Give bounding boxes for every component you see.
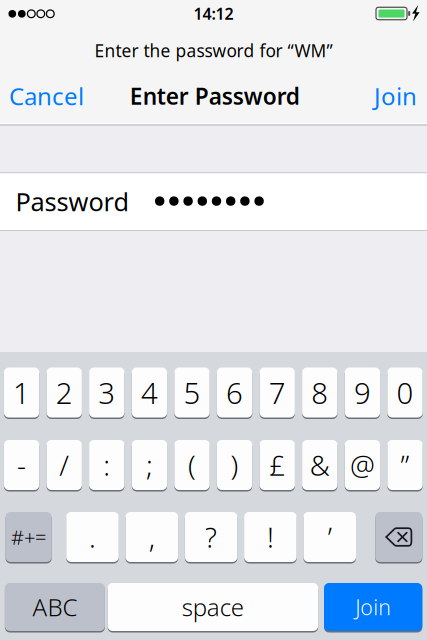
staticText: 0 (396, 373, 413, 412)
staticText: 2 (56, 373, 73, 412)
staticText: Join (355, 593, 391, 621)
staticText: £ (269, 446, 285, 484)
staticText: ; (146, 446, 153, 484)
button[interactable]: Delete (375, 511, 422, 563)
staticText: . (89, 518, 96, 556)
staticText: 14:12 (193, 3, 233, 24)
button[interactable]: 8 (302, 366, 337, 418)
staticText: ’ (328, 518, 332, 556)
staticText: 6 (226, 373, 243, 412)
button[interactable]: Cancel (0, 71, 95, 121)
staticText: - (17, 446, 26, 484)
button[interactable]: ( (174, 439, 210, 491)
staticText: ( (188, 446, 196, 484)
staticText: Enter Password (130, 81, 300, 111)
button[interactable]: & (302, 439, 337, 491)
button[interactable]: 3 (89, 366, 124, 418)
staticText: 1 (13, 373, 30, 412)
button[interactable]: 4 (132, 366, 167, 418)
staticText: / (59, 446, 69, 484)
staticText: ? (205, 518, 217, 556)
staticText: 5 (183, 373, 200, 412)
staticText: : (103, 446, 110, 484)
button[interactable]: ! (244, 511, 297, 563)
button[interactable]: 1 (4, 366, 39, 418)
button[interactable]: More symbols (6, 511, 52, 563)
staticText: ) (231, 446, 239, 484)
button[interactable]: @ (345, 439, 380, 491)
button[interactable]: ’ (303, 511, 356, 563)
staticText: #+= (11, 524, 46, 550)
button[interactable]: ? (185, 511, 237, 563)
button[interactable]: ) (217, 439, 252, 491)
staticText: @ (350, 446, 375, 484)
staticText: 8 (311, 373, 328, 412)
staticText: 4 (141, 373, 158, 412)
button[interactable]: : (89, 439, 124, 491)
staticText: Enter the password for “WM” (94, 39, 332, 62)
staticText: Cancel (9, 80, 84, 112)
button[interactable]: ; (132, 439, 167, 491)
button[interactable]: £ (259, 439, 295, 491)
button[interactable]: / (46, 439, 82, 491)
button[interactable]: . (66, 511, 119, 563)
staticText: 9 (354, 373, 371, 412)
button[interactable]: 2 (46, 366, 82, 418)
staticText: ” (400, 446, 409, 484)
staticText: , (149, 518, 155, 556)
button[interactable]: ” (387, 439, 423, 491)
button[interactable]: Join (324, 582, 422, 632)
staticText: 3 (98, 373, 115, 412)
staticText: space (182, 591, 244, 623)
button[interactable]: - (4, 439, 39, 491)
button[interactable]: ABC (5, 582, 105, 632)
button[interactable]: 7 (259, 366, 295, 418)
staticText: ABC (32, 591, 77, 623)
button[interactable]: 6 (217, 366, 252, 418)
staticText: ! (267, 518, 274, 556)
button[interactable]: , (125, 511, 178, 563)
button[interactable]: 0 (387, 366, 423, 418)
button[interactable]: 5 (174, 366, 210, 418)
staticText: Password (15, 184, 129, 218)
button[interactable]: Join (363, 71, 427, 121)
staticText: 7 (269, 373, 286, 412)
button[interactable]: space (108, 582, 318, 632)
staticText: & (310, 446, 330, 484)
staticText: Join (374, 80, 417, 112)
button[interactable]: 9 (345, 366, 380, 418)
